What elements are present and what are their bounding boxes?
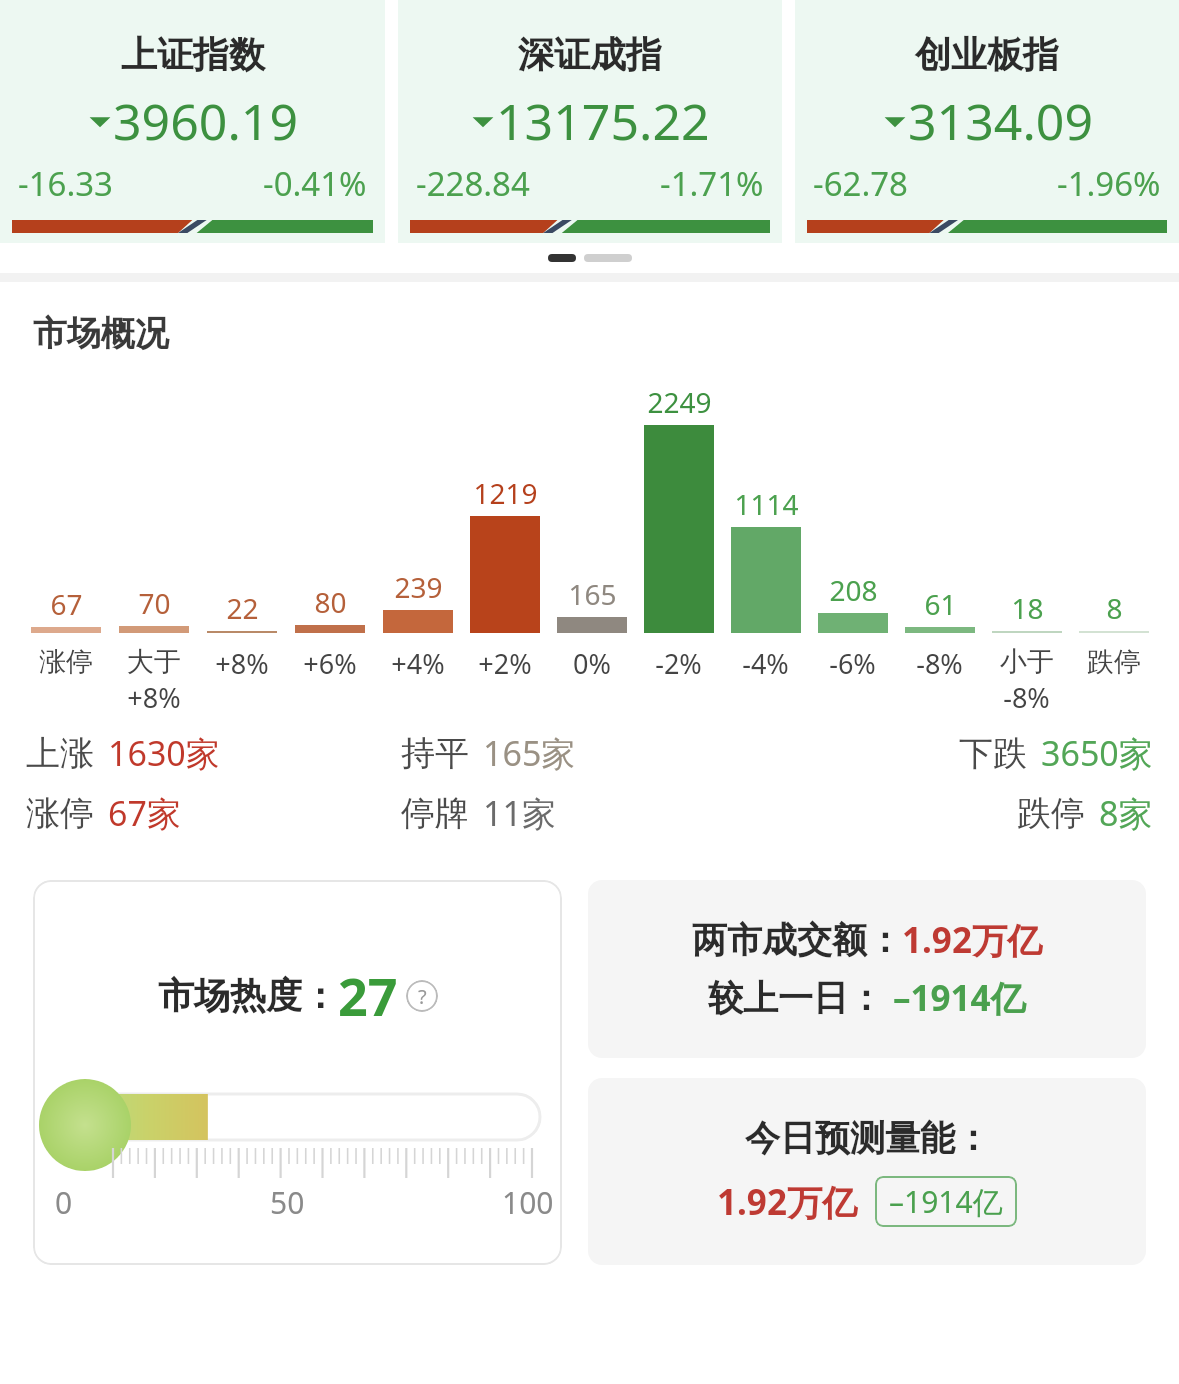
staticText: -8% <box>916 645 963 682</box>
staticText: -8% <box>1003 679 1050 716</box>
button[interactable]: 上证指数 <box>0 0 385 243</box>
staticText: 208 <box>829 571 878 609</box>
staticText: -16.33 <box>18 161 113 206</box>
staticText: 市场概况 <box>33 312 169 355</box>
staticText: 涨停 <box>39 645 93 679</box>
staticText: 大于 <box>127 645 181 679</box>
staticText: 67家 <box>108 790 181 836</box>
staticText: 跌停 <box>1017 792 1085 835</box>
staticText: 2249 <box>647 383 712 421</box>
staticText: 3650家 <box>1041 730 1153 776</box>
staticText: -6% <box>829 645 876 682</box>
staticText: 1114 <box>734 485 799 523</box>
staticText: 涨停 <box>26 792 94 835</box>
staticText: 3960.19 <box>113 87 298 155</box>
staticText: 18 <box>1011 589 1044 627</box>
button[interactable]: 帮助 <box>406 980 438 1012</box>
staticText: 较上一日： <box>708 976 883 1020</box>
staticText: –1914亿 <box>889 1181 1003 1222</box>
staticText: -228.84 <box>416 161 530 206</box>
staticText: 1.92万亿 <box>717 1178 857 1226</box>
staticText: –1914亿 <box>893 974 1026 1022</box>
staticText: -4% <box>742 645 789 682</box>
staticText: -1.96% <box>1057 161 1161 206</box>
button[interactable]: 市场热度： <box>33 880 562 1265</box>
staticText: 11家 <box>483 790 556 836</box>
staticText: 今日预测量能： <box>745 1116 990 1160</box>
staticText: 165 <box>568 575 617 613</box>
staticText: 50 <box>270 1182 305 1223</box>
staticText: 跌停 <box>1087 645 1141 679</box>
staticText: -1.71% <box>660 161 764 206</box>
staticText: 上涨 <box>26 732 94 775</box>
staticText: 下跌 <box>959 732 1027 775</box>
staticText: 61 <box>924 585 957 623</box>
staticText: 13175.22 <box>496 87 710 155</box>
staticText: 165家 <box>483 730 576 776</box>
staticText: 深证成指 <box>518 32 662 77</box>
staticText: 0 <box>55 1182 73 1223</box>
staticText: +2% <box>478 645 532 682</box>
staticText: 上证指数 <box>121 32 265 77</box>
staticText: 停牌 <box>401 792 469 835</box>
staticText: 8 <box>1106 589 1123 627</box>
staticText: 8家 <box>1099 790 1153 836</box>
button[interactable]: 两市成交额： <box>588 880 1146 1058</box>
staticText: -0.41% <box>263 161 367 206</box>
staticText: 1.92万亿 <box>902 916 1042 964</box>
staticText: 80 <box>314 583 347 621</box>
button[interactable]: 创业板指 <box>795 0 1179 243</box>
staticText: 市场热度： <box>158 973 338 1018</box>
staticText: 27 <box>338 960 398 1031</box>
staticText: -62.78 <box>813 161 908 206</box>
staticText: -2% <box>655 645 702 682</box>
staticText: 239 <box>394 568 443 606</box>
button[interactable]: 深证成指 <box>398 0 782 243</box>
button[interactable]: 今日预测量能： <box>588 1078 1146 1265</box>
staticText: 创业板指 <box>915 32 1059 77</box>
staticText: +6% <box>303 645 357 682</box>
staticText: ? <box>418 983 427 1010</box>
staticText: 100 <box>502 1182 554 1223</box>
staticText: 3134.09 <box>908 87 1093 155</box>
staticText: +4% <box>391 645 445 682</box>
staticText: 两市成交额： <box>692 918 902 962</box>
staticText: 小于 <box>1000 645 1054 679</box>
staticText: 0% <box>573 645 611 682</box>
staticText: 持平 <box>401 732 469 775</box>
staticText: +8% <box>215 645 269 682</box>
staticText: 70 <box>138 584 171 622</box>
staticText: 1219 <box>473 474 538 512</box>
staticText: 1630家 <box>108 730 220 776</box>
staticText: 67 <box>50 585 83 623</box>
staticText: 22 <box>226 589 259 627</box>
staticText: +8% <box>127 679 181 716</box>
